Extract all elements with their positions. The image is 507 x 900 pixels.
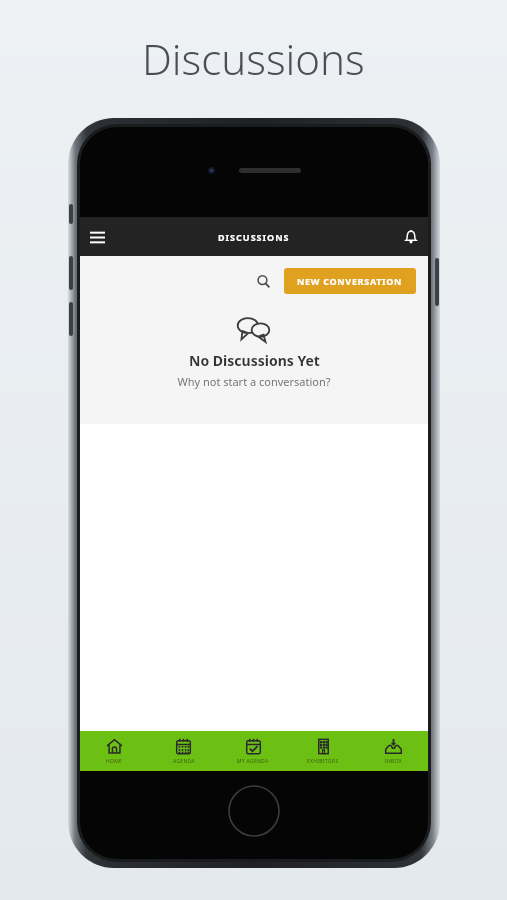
button[interactable]: HOME	[80, 731, 149, 771]
staticText: INBOX	[385, 758, 402, 765]
staticText: HOME	[106, 758, 123, 765]
button[interactable]: Notifications	[394, 220, 428, 254]
button[interactable]: Search	[250, 268, 276, 294]
button[interactable]: NEW CONVERSATION	[284, 268, 416, 294]
button[interactable]: EXHIBITORS	[288, 731, 358, 771]
staticText: No Discussions Yet	[189, 351, 320, 370]
button[interactable]: MY AGENDA	[218, 731, 288, 771]
staticText: AGENDA	[173, 758, 195, 765]
button[interactable]: AGENDA	[149, 731, 218, 771]
staticText: Why not start a conversation?	[177, 374, 331, 389]
staticText: MY AGENDA	[237, 758, 269, 765]
staticText: Discussions	[142, 30, 365, 87]
staticText: EXHIBITORS	[307, 758, 339, 765]
button[interactable]: INBOX	[358, 731, 428, 771]
button[interactable]: Menu	[80, 220, 114, 254]
staticText: NEW CONVERSATION	[297, 275, 403, 287]
staticText: DISCUSSIONS	[218, 231, 290, 243]
